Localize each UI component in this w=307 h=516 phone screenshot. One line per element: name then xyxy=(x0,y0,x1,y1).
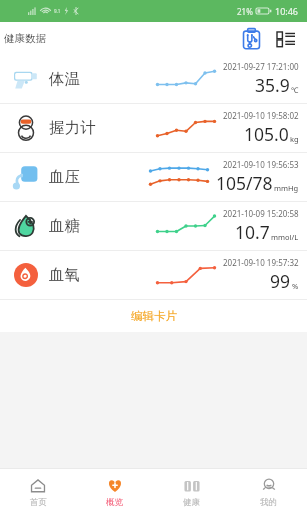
staticText: 血压 xyxy=(49,167,80,187)
staticText: 105.0 xyxy=(244,122,289,146)
staticText: 我的 xyxy=(260,497,277,508)
staticText: 概览 xyxy=(106,497,123,508)
button[interactable]: 健康数据 xyxy=(2,28,48,49)
staticText: 血氧 xyxy=(49,265,80,285)
button[interactable]: 血糖 xyxy=(0,202,307,250)
staticText: 99 xyxy=(270,269,291,293)
staticText: 首页 xyxy=(30,497,47,508)
staticText: 血糖 xyxy=(49,216,80,236)
staticText: mmHg xyxy=(274,183,299,193)
button[interactable]: 编辑卡片 xyxy=(0,300,307,332)
staticText: 体温 xyxy=(49,69,80,89)
staticText: mmol/L xyxy=(271,232,299,242)
staticText: 健康 xyxy=(183,497,200,508)
button[interactable]: 我的 xyxy=(230,468,307,516)
staticText: 健康数据 xyxy=(4,32,46,45)
button[interactable]: 握力计 xyxy=(0,104,307,152)
staticText: ℃ xyxy=(291,85,299,95)
button[interactable]: 健康 xyxy=(153,468,230,516)
staticText: 21% xyxy=(237,6,253,17)
staticText: % xyxy=(292,281,299,291)
button[interactable]: 概览 xyxy=(76,468,153,516)
staticText: 2021-09-10 19:56:53 xyxy=(223,159,299,170)
button[interactable]: 首页 xyxy=(0,468,76,516)
button[interactable]: 血压 xyxy=(0,153,307,201)
button[interactable]: 血氧 xyxy=(0,251,307,299)
staticText: 2021-10-09 15:20:58 xyxy=(223,208,299,219)
staticText: 9.1 xyxy=(54,8,61,14)
staticText: 编辑卡片 xyxy=(131,309,177,323)
staticText: 2021-09-10 19:57:32 xyxy=(223,257,299,268)
staticText: 握力计 xyxy=(49,118,96,138)
button[interactable]: 体温 xyxy=(0,55,307,103)
button[interactable]: List view xyxy=(273,27,299,51)
staticText: 105/78 xyxy=(216,171,273,195)
staticText: 2021-09-10 19:58:02 xyxy=(223,110,299,121)
staticText: 35.9 xyxy=(255,73,290,97)
staticText: 2021-09-27 17:21:00 xyxy=(223,61,299,72)
staticText: 10:46 xyxy=(275,5,299,17)
staticText: kg xyxy=(290,134,299,144)
button[interactable]: Device xyxy=(238,24,265,54)
staticText: 10.7 xyxy=(235,220,270,244)
